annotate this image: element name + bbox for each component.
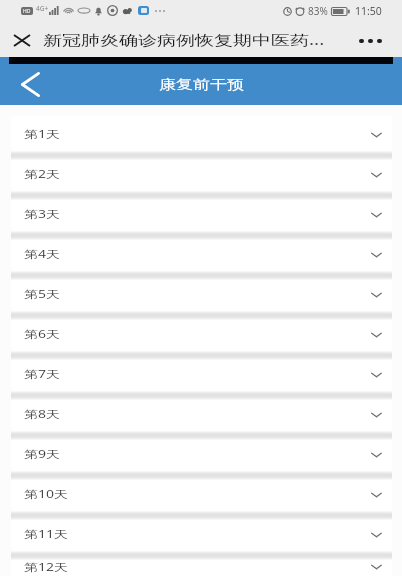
staticText: 第3天 <box>24 206 61 221</box>
staticText: 康复前干预 <box>159 76 244 92</box>
staticText: 第11天 <box>24 526 69 541</box>
button[interactable]: Back <box>9 63 51 105</box>
staticText: 4G+ <box>36 4 49 13</box>
button[interactable]: 第5天 <box>11 276 392 311</box>
button[interactable]: 第1天 <box>11 116 392 151</box>
staticText: 第12天 <box>24 559 69 574</box>
staticText: 新冠肺炎确诊病例恢复期中医药... <box>43 31 325 49</box>
staticText: 第5天 <box>24 286 61 301</box>
button[interactable]: Close <box>6 24 38 56</box>
button[interactable]: 第4天 <box>11 236 392 271</box>
button[interactable]: 第3天 <box>11 196 392 231</box>
button[interactable]: 第10天 <box>11 476 392 511</box>
button[interactable]: 第8天 <box>11 396 392 431</box>
staticText: 第7天 <box>24 366 61 381</box>
staticText: 第8天 <box>24 406 61 421</box>
staticText: 第1天 <box>24 126 61 141</box>
staticText: 第4天 <box>24 246 61 261</box>
staticText: 第10天 <box>24 486 69 501</box>
staticText: 第2天 <box>24 166 61 181</box>
button[interactable]: 第2天 <box>11 156 392 191</box>
staticText: 11:50 <box>355 4 382 18</box>
button[interactable]: 第9天 <box>11 436 392 471</box>
button[interactable]: 第7天 <box>11 356 392 391</box>
button[interactable]: 第6天 <box>11 316 392 351</box>
staticText: HD <box>23 8 31 15</box>
staticText: 83% <box>308 4 328 18</box>
button[interactable]: More options <box>358 25 390 55</box>
staticText: 第9天 <box>24 446 61 461</box>
button[interactable]: 第12天 <box>11 556 392 576</box>
staticText: 第6天 <box>24 326 61 341</box>
button[interactable]: 第11天 <box>11 516 392 551</box>
